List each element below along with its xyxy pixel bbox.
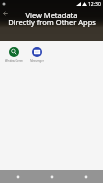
button[interactable]: Navigate up: [0, 8, 11, 19]
button[interactable]: Window Green: [3, 47, 25, 63]
button[interactable]: Messenger: [26, 47, 48, 63]
button[interactable]: Back: [0, 170, 35, 183]
staticText: 12:30: [88, 1, 101, 8]
button[interactable]: Recent apps: [69, 170, 103, 183]
staticText: View Metadata: [25, 10, 78, 20]
button[interactable]: Home: [35, 170, 69, 183]
staticText: Messenger: [30, 59, 44, 63]
staticText: Window Green: [5, 59, 23, 63]
staticText: Directly from Other Apps: [8, 17, 96, 27]
